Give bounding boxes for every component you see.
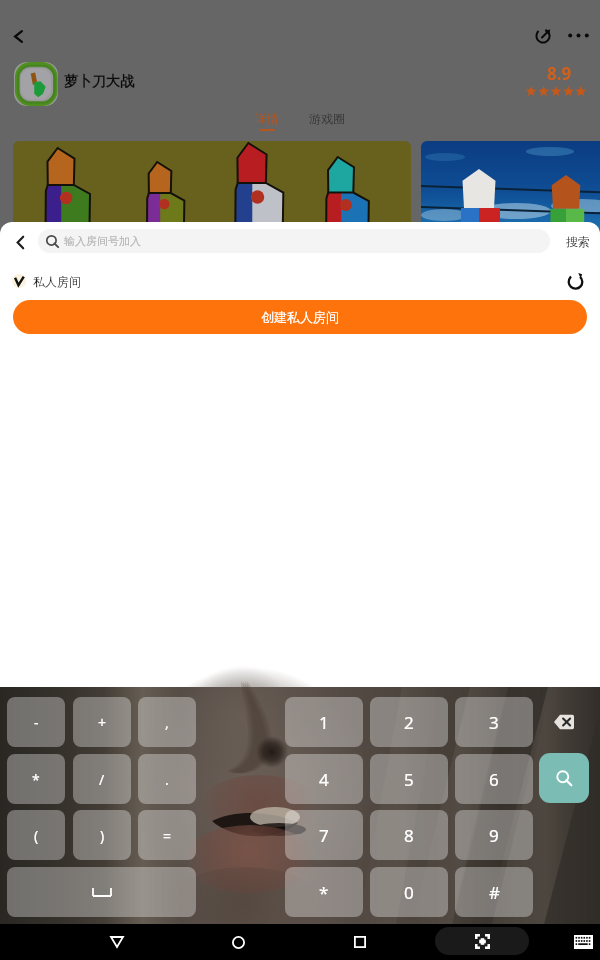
staticText: 8 [404,824,414,847]
button[interactable]: More options [558,14,598,57]
button[interactable]: Home [214,924,262,960]
staticText: 4 [319,768,329,791]
button[interactable]: Screenshot 1 [13,141,411,371]
button[interactable]: Refresh [556,270,594,292]
button[interactable]: 7 [285,810,363,860]
button[interactable]: 5 [370,754,448,804]
button[interactable]: 9 [455,810,533,860]
button[interactable]: Back [4,222,36,262]
button[interactable]: 游戏圈 [305,106,349,134]
staticText: 2 [404,711,414,734]
button[interactable]: # [455,867,533,917]
button[interactable]: 2 [370,697,448,747]
button[interactable]: 0 [370,867,448,917]
staticText: 8.9 [547,62,572,85]
staticText: 输入房间号加入 [64,234,141,248]
staticText: ( [34,826,39,845]
staticText: / [99,770,105,789]
button[interactable]: ) [73,810,131,860]
button[interactable]: Share [522,14,563,57]
button[interactable]: . [138,754,196,804]
button[interactable]: 搜索 [556,229,600,253]
staticText: ) [100,826,105,845]
button[interactable]: Recent apps [336,924,384,960]
staticText: * [319,881,329,904]
button[interactable]: ( [7,810,65,860]
button[interactable]: Space [7,867,196,917]
button[interactable]: 萝卜刀大战 [64,73,134,91]
button[interactable]: 3 [455,697,533,747]
staticText: 9 [489,824,499,847]
button[interactable]: , [138,697,196,747]
staticText: + [98,713,107,732]
staticText: 0 [404,881,414,904]
button[interactable]: 私人房间 [12,270,81,292]
staticText: - [34,713,39,732]
button[interactable]: 创建私人房间 [13,300,587,334]
button[interactable]: Keyboard [565,924,600,960]
staticText: 7 [319,824,329,847]
staticText: * [32,770,40,789]
button[interactable]: - [7,697,65,747]
staticText: 1 [319,711,329,734]
button[interactable]: 4 [285,754,363,804]
button[interactable]: * [285,867,363,917]
button[interactable]: = [138,810,196,860]
staticText: # [489,881,500,904]
button[interactable]: * [7,754,65,804]
button[interactable]: Back [0,15,36,57]
staticText: 3 [489,711,499,734]
staticText: . [165,770,169,789]
staticText: 创建私人房间 [261,309,339,325]
button[interactable]: 8 [370,810,448,860]
button[interactable]: / [73,754,131,804]
staticText: , [165,713,169,732]
button[interactable]: Search [539,753,589,803]
staticText: 搜索 [566,234,590,249]
button[interactable]: + [73,697,131,747]
button[interactable]: Backspace [539,697,588,747]
staticText: 6 [489,768,499,791]
staticText: 游戏圈 [309,111,345,126]
button[interactable]: Screenshot 2 [421,141,600,371]
staticText: 5 [404,768,414,791]
button[interactable]: App icon [14,62,58,106]
button[interactable]: Scan [435,927,529,955]
button[interactable]: 详情 [246,106,288,134]
staticText: 私人房间 [33,274,81,289]
button[interactable]: 6 [455,754,533,804]
button[interactable]: 输入房间号加入 [38,229,550,253]
button[interactable]: Back [93,924,141,960]
staticText: = [163,826,172,845]
button[interactable]: 1 [285,697,363,747]
staticText: 详情 [255,111,279,126]
